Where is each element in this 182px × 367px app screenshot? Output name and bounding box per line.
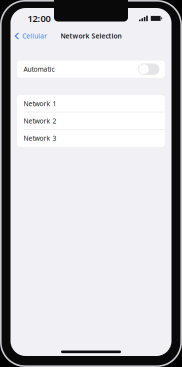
staticText: Network 1 bbox=[23, 99, 56, 108]
staticText: Network 2 bbox=[23, 116, 56, 125]
staticText: Automatic bbox=[23, 65, 54, 74]
button[interactable]: Network 3 bbox=[17, 130, 165, 147]
staticText: 12:00 bbox=[27, 12, 50, 24]
staticText: Network Selection bbox=[60, 32, 121, 40]
button[interactable]: Network 1 bbox=[17, 95, 165, 112]
staticText: Cellular bbox=[22, 32, 47, 40]
button[interactable]: Cellular bbox=[12, 28, 50, 44]
button[interactable]: Automatic bbox=[17, 60, 165, 78]
staticText: Network 3 bbox=[23, 134, 56, 143]
button[interactable]: Network 2 bbox=[17, 112, 165, 130]
